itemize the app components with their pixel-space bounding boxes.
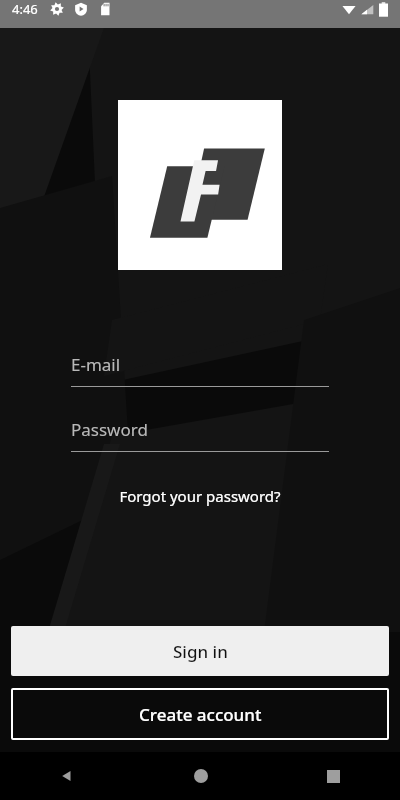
staticText: 4:46 [12,0,38,18]
staticText: Forgot your password? [119,486,281,506]
button[interactable]: E-mail [71,353,329,387]
staticText: E-mail [71,353,121,376]
button[interactable]: Forgot your password? [0,486,400,506]
staticText: Create account [139,703,262,726]
staticText: Sign in [173,640,228,663]
button[interactable]: Recent apps [267,752,400,800]
button[interactable]: Back [0,752,134,800]
staticText: Password [71,418,148,441]
button[interactable]: Home [134,752,267,800]
button[interactable]: Sign in [11,626,389,676]
button[interactable]: Create account [11,688,389,740]
button[interactable]: Password [71,418,329,452]
